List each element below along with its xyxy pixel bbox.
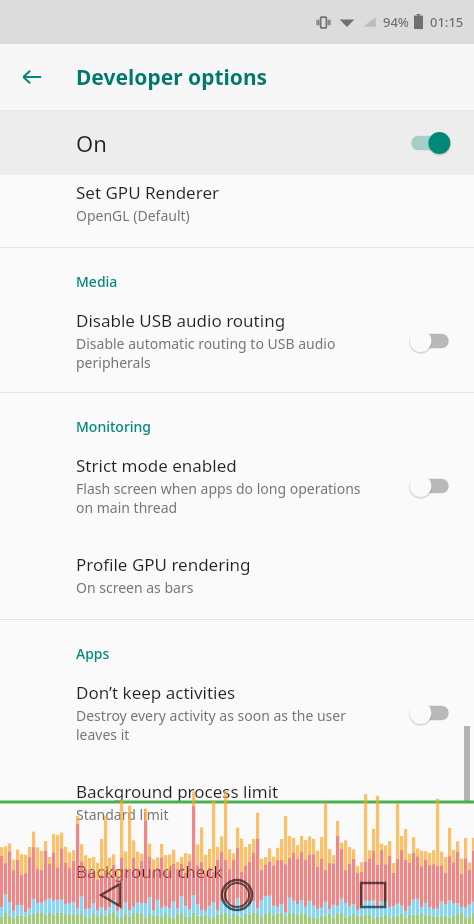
staticText: Don’t keep activities bbox=[76, 681, 236, 704]
staticText: Disable USB audio routing bbox=[76, 309, 286, 332]
button[interactable]: Toggle off bbox=[406, 328, 454, 354]
staticText: Profile GPU rendering bbox=[76, 553, 251, 576]
staticText: OpenGL (Default) bbox=[76, 206, 190, 225]
button[interactable]: Toggle on bbox=[406, 130, 454, 156]
staticText: Flash screen when apps do long operation… bbox=[76, 479, 361, 517]
button[interactable]: Strict mode enabled bbox=[0, 440, 474, 521]
staticText: Apps bbox=[76, 644, 110, 663]
staticText: Monitoring bbox=[76, 417, 152, 436]
button[interactable]: Don’t keep activities bbox=[0, 667, 474, 748]
button[interactable]: Set GPU Renderer bbox=[0, 175, 474, 229]
staticText: Background process limit bbox=[76, 780, 279, 803]
button[interactable]: Profile GPU rendering bbox=[0, 539, 474, 601]
button[interactable]: Toggle off bbox=[406, 700, 454, 726]
staticText: On screen as bars bbox=[76, 578, 194, 597]
staticText: Media bbox=[76, 272, 118, 291]
button[interactable]: Disable USB audio routing bbox=[0, 295, 474, 376]
staticText: Disable automatic routing to USB audio p… bbox=[76, 334, 336, 372]
staticText: Strict mode enabled bbox=[76, 454, 237, 477]
staticText: On bbox=[76, 128, 107, 158]
button[interactable]: On bbox=[0, 111, 474, 175]
button[interactable]: Background check bbox=[0, 846, 474, 887]
staticText: Standard limit bbox=[76, 805, 169, 824]
button[interactable]: Toggle off bbox=[406, 473, 454, 499]
staticText: Background check bbox=[76, 860, 223, 883]
staticText: 01:15 bbox=[430, 13, 464, 31]
staticText: Set GPU Renderer bbox=[76, 181, 219, 204]
staticText: 94% bbox=[383, 13, 409, 31]
button[interactable]: Background process limit bbox=[0, 766, 474, 828]
staticText: Developer options bbox=[76, 63, 268, 92]
staticText: Destroy every activity as soon as the us… bbox=[76, 706, 346, 744]
button[interactable]: Back bbox=[8, 53, 56, 101]
